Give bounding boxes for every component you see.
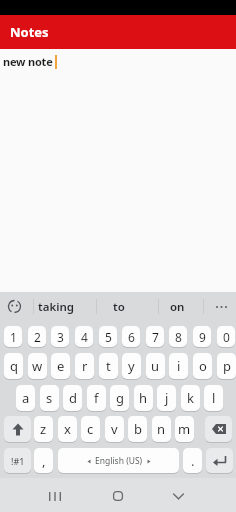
- button[interactable]: t: [99, 353, 118, 379]
- button[interactable]: f: [87, 385, 106, 411]
- button[interactable]: on: [149, 296, 205, 317]
- staticText: 0: [223, 329, 230, 345]
- staticText: 5: [105, 329, 112, 345]
- button[interactable]: i: [169, 353, 188, 379]
- button[interactable]: u: [146, 353, 165, 379]
- button[interactable]: [205, 416, 232, 442]
- button[interactable]: [167, 486, 189, 506]
- staticText: d: [69, 389, 77, 407]
- staticText: ,: [42, 452, 46, 470]
- button[interactable]: taking: [28, 296, 84, 317]
- button[interactable]: [212, 299, 232, 314]
- button[interactable]: 3: [51, 326, 69, 347]
- button[interactable]: a: [16, 385, 35, 411]
- button[interactable]: y: [122, 353, 141, 379]
- button[interactable]: 0: [217, 326, 235, 347]
- button[interactable]: b: [128, 416, 147, 442]
- button[interactable]: [44, 486, 66, 506]
- staticText: 2: [34, 329, 41, 345]
- staticText: c: [87, 420, 94, 438]
- staticText: !#1: [11, 455, 25, 467]
- staticText: 1: [10, 329, 17, 345]
- button[interactable]: to: [91, 296, 147, 317]
- button[interactable]: [206, 448, 233, 473]
- button[interactable]: l: [204, 385, 223, 411]
- button[interactable]: [4, 416, 31, 442]
- staticText: taking: [38, 299, 74, 315]
- button[interactable]: r: [75, 353, 94, 379]
- button[interactable]: w: [28, 353, 47, 379]
- staticText: z: [40, 420, 47, 438]
- staticText: n: [157, 420, 166, 438]
- staticText: v: [111, 420, 118, 438]
- staticText: q: [10, 357, 18, 375]
- button[interactable]: n: [152, 416, 171, 442]
- button[interactable]: z: [34, 416, 53, 442]
- staticText: s: [46, 389, 53, 407]
- staticText: k: [187, 389, 194, 407]
- staticText: new note: [3, 54, 53, 69]
- button[interactable]: .: [183, 448, 202, 473]
- staticText: a: [22, 389, 30, 407]
- button[interactable]: v: [105, 416, 124, 442]
- staticText: 6: [128, 329, 135, 345]
- button[interactable]: ,: [34, 448, 53, 473]
- staticText: English (US): [95, 455, 143, 467]
- staticText: 9: [199, 329, 206, 345]
- button[interactable]: k: [181, 385, 200, 411]
- staticText: i: [177, 357, 181, 375]
- button[interactable]: English (US): [58, 448, 179, 473]
- staticText: h: [139, 389, 148, 407]
- staticText: 7: [152, 329, 159, 345]
- button[interactable]: x: [58, 416, 77, 442]
- button[interactable]: e: [51, 353, 70, 379]
- button[interactable]: 7: [146, 326, 164, 347]
- button[interactable]: 5: [99, 326, 117, 347]
- button[interactable]: 8: [169, 326, 187, 347]
- button[interactable]: j: [157, 385, 176, 411]
- button[interactable]: [7, 299, 22, 314]
- staticText: g: [116, 389, 124, 407]
- button[interactable]: h: [134, 385, 153, 411]
- button[interactable]: c: [81, 416, 100, 442]
- button[interactable]: 1: [4, 326, 22, 347]
- staticText: Notes: [10, 23, 49, 41]
- button[interactable]: p: [217, 353, 236, 379]
- staticText: o: [199, 357, 207, 375]
- button[interactable]: s: [40, 385, 59, 411]
- staticText: e: [57, 357, 65, 375]
- staticText: f: [94, 389, 99, 407]
- button[interactable]: g: [110, 385, 129, 411]
- button[interactable]: Notes: [0, 15, 236, 49]
- staticText: r: [82, 357, 88, 375]
- staticText: p: [223, 357, 231, 375]
- staticText: 4: [81, 329, 88, 345]
- button[interactable]: o: [193, 353, 212, 379]
- staticText: w: [32, 357, 43, 375]
- staticText: l: [212, 389, 216, 407]
- staticText: 8: [175, 329, 182, 345]
- staticText: on: [170, 299, 185, 315]
- staticText: x: [64, 420, 71, 438]
- staticText: j: [165, 389, 169, 407]
- button[interactable]: 2: [28, 326, 46, 347]
- staticText: .: [191, 452, 195, 470]
- staticText: t: [106, 357, 111, 375]
- button[interactable]: 6: [122, 326, 140, 347]
- button[interactable]: q: [4, 353, 23, 379]
- staticText: u: [151, 357, 160, 375]
- button[interactable]: 9: [193, 326, 211, 347]
- staticText: b: [134, 420, 142, 438]
- button[interactable]: d: [63, 385, 82, 411]
- staticText: y: [128, 357, 135, 375]
- button[interactable]: !#1: [4, 448, 31, 473]
- button[interactable]: [107, 486, 129, 506]
- staticText: 3: [57, 329, 64, 345]
- staticText: m: [178, 420, 191, 438]
- button[interactable]: 4: [75, 326, 93, 347]
- staticText: to: [113, 299, 125, 315]
- button[interactable]: m: [175, 416, 194, 442]
